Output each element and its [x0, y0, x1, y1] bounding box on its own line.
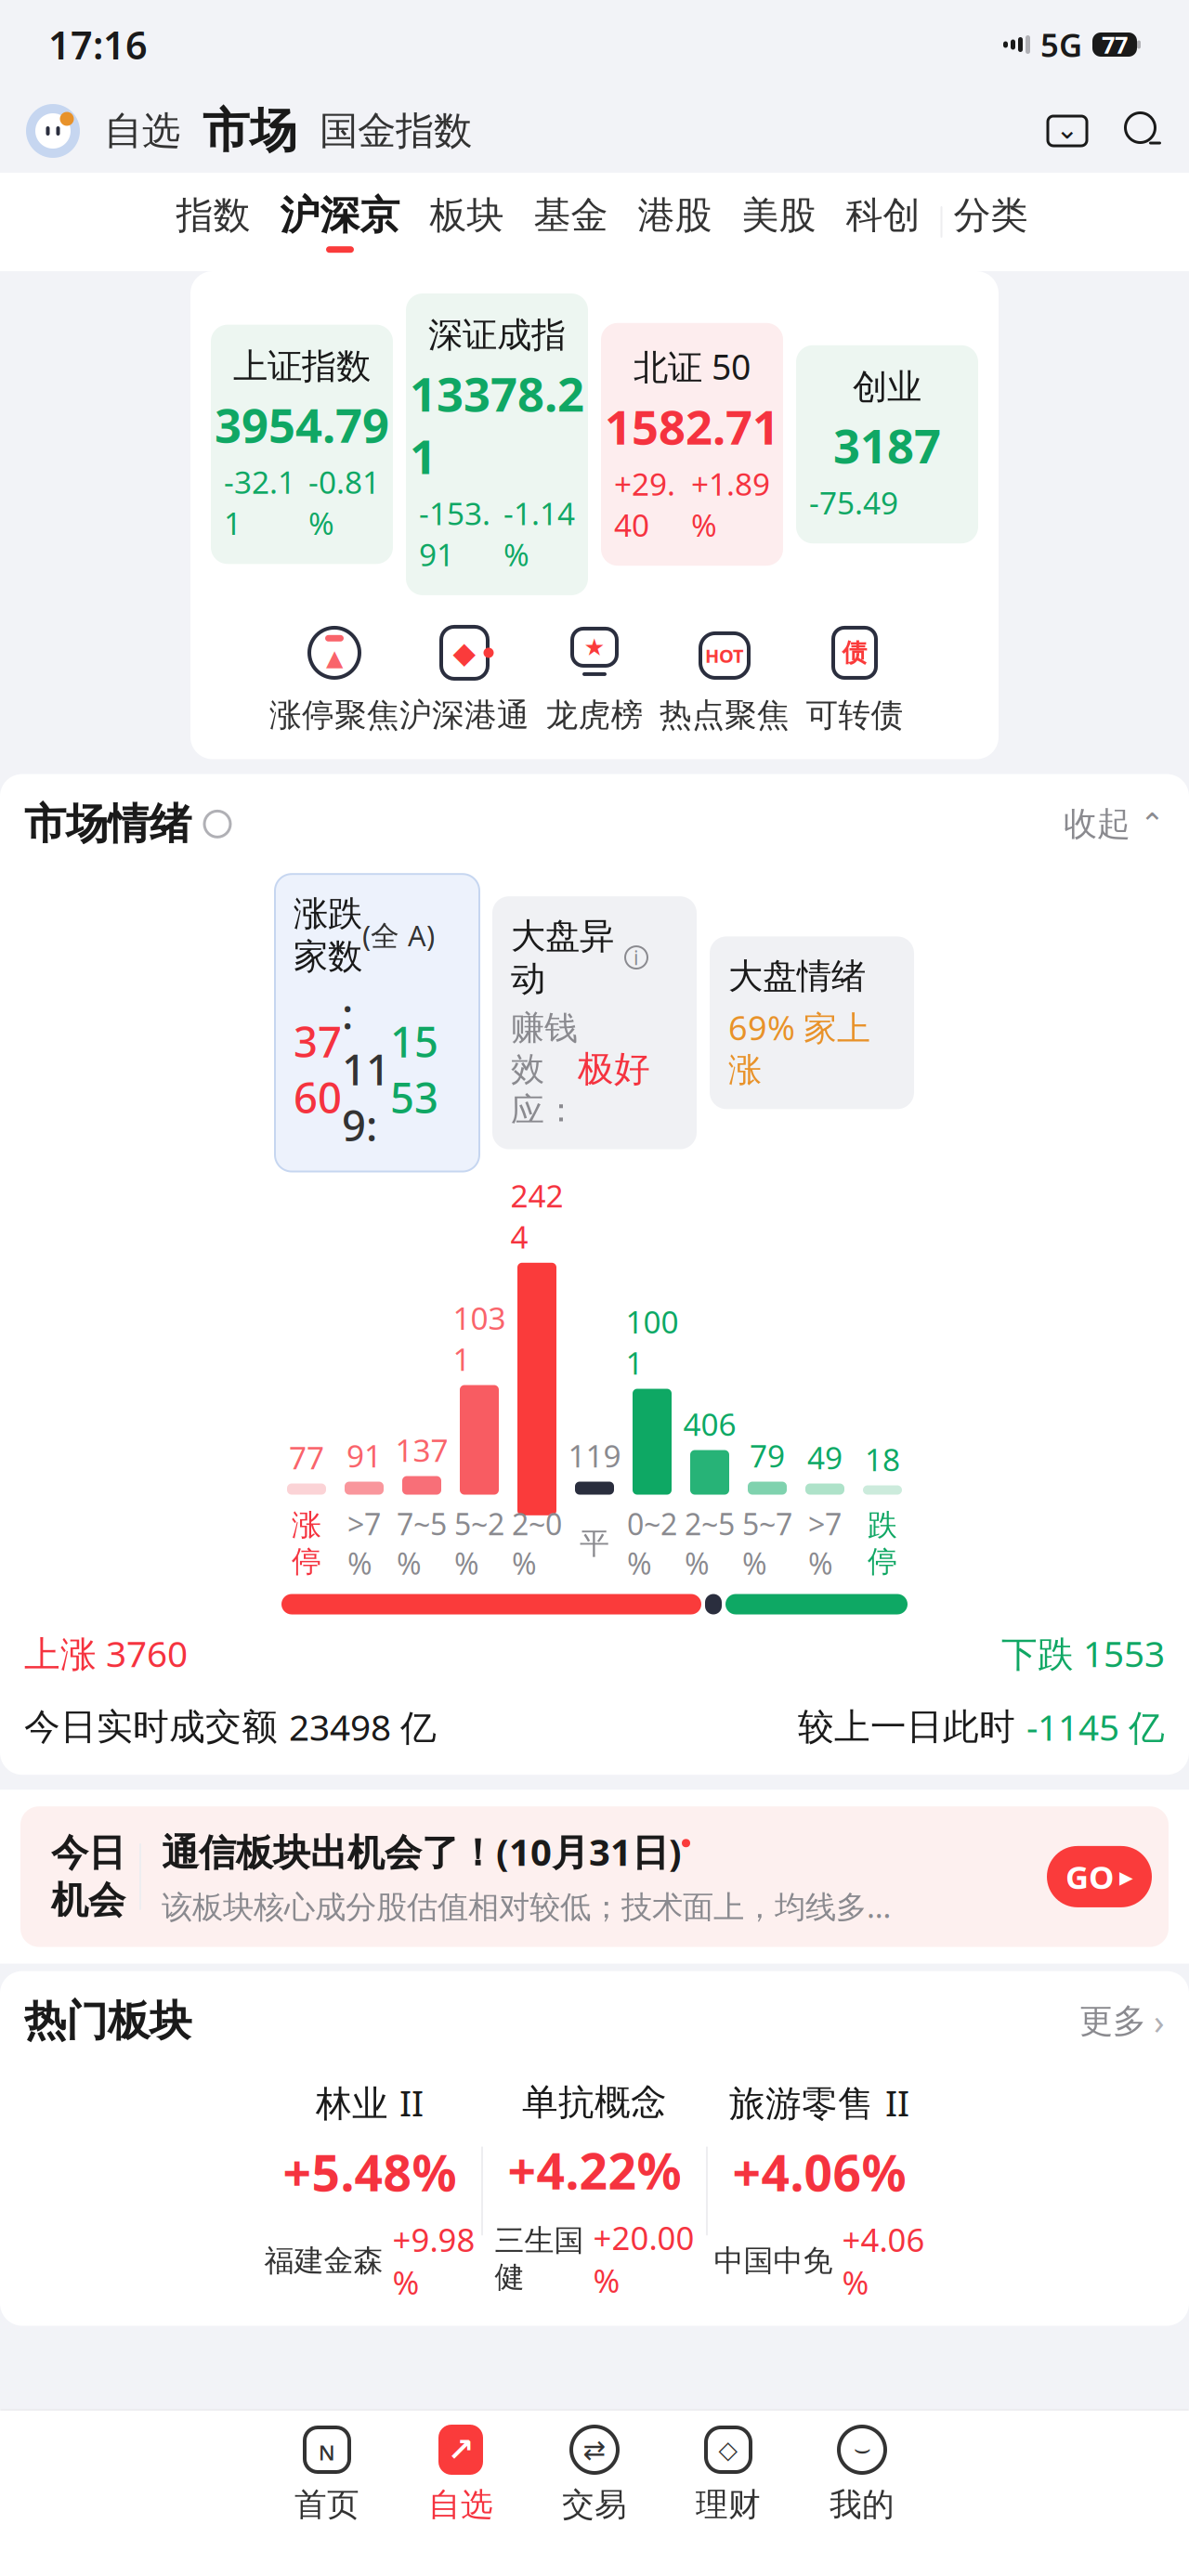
staticText: 今日	[51, 1830, 125, 1876]
button[interactable]: 上证指数	[211, 325, 393, 564]
staticText: 自选	[428, 2485, 493, 2525]
button[interactable]: ◇	[661, 2424, 795, 2525]
staticText: 国金指数	[320, 107, 472, 155]
button[interactable]: 今日	[0, 1790, 1189, 1964]
staticText: 极好	[578, 1047, 650, 1091]
staticText: ɴ	[318, 2432, 336, 2468]
staticText: 旅游零售 II	[729, 2079, 909, 2126]
staticText: 5~7%	[742, 1504, 792, 1583]
button[interactable]: 刷新	[204, 811, 230, 837]
button[interactable]: 搜索	[1122, 110, 1165, 152]
button[interactable]: 创业	[796, 345, 978, 543]
button[interactable]: 基金	[519, 193, 623, 251]
staticText: 交易	[562, 2485, 627, 2525]
staticText: +4.22%	[508, 2137, 681, 2203]
button[interactable]: 旅游零售 II	[708, 2079, 931, 2303]
staticText: -1.14%	[503, 493, 575, 575]
staticText: 7~5%	[397, 1504, 447, 1583]
button[interactable]: 美股	[727, 193, 831, 251]
staticText: 中国中免	[714, 2242, 833, 2279]
staticText: 分类	[954, 193, 1028, 238]
button[interactable]: 收起	[1064, 804, 1165, 845]
button[interactable]: ◆	[399, 623, 529, 735]
staticText: ★	[584, 634, 605, 661]
staticText: 机会	[51, 1878, 125, 1923]
button[interactable]: 港股	[623, 193, 727, 251]
staticText: 1031	[453, 1297, 506, 1379]
button[interactable]: 自选	[104, 107, 180, 155]
button[interactable]: 市场	[203, 102, 297, 160]
staticText: 69% 家上涨	[728, 1005, 870, 1090]
staticText: 市场情绪	[24, 798, 191, 850]
staticText: 119	[568, 1435, 621, 1476]
button[interactable]: 板块	[415, 193, 519, 251]
button[interactable]: HOT	[660, 623, 790, 735]
staticText: -1145 亿	[1026, 1703, 1165, 1751]
button[interactable]: 指数	[161, 193, 265, 251]
staticText: 美股	[742, 193, 816, 238]
staticText: ⇄	[583, 2434, 606, 2465]
button[interactable]: 用户头像	[24, 102, 82, 160]
staticText: 23498 亿	[289, 1703, 437, 1751]
staticText: 指数	[176, 193, 250, 238]
staticText: 2424	[510, 1175, 563, 1257]
button[interactable]: 林业 II	[258, 2079, 481, 2303]
button[interactable]: ▲	[269, 623, 399, 735]
button[interactable]: 更多	[1079, 1998, 1165, 2044]
staticText: :119:	[342, 985, 390, 1153]
staticText: GO	[1065, 1855, 1114, 1898]
staticText: 上涨 3760	[24, 1629, 188, 1677]
button[interactable]: ɴ	[260, 2424, 394, 2525]
button[interactable]: 国金指数	[320, 107, 472, 155]
button[interactable]: ⇄	[528, 2424, 661, 2525]
staticText: 17:16	[48, 19, 148, 70]
button[interactable]: 北证 50	[601, 323, 783, 566]
staticText: 三生国健	[495, 2222, 584, 2295]
staticText: 平	[580, 1525, 609, 1562]
staticText: 上证指数	[233, 345, 371, 388]
staticText: 3760	[294, 1013, 342, 1125]
staticText: 77	[1102, 29, 1128, 60]
staticText: 79	[750, 1435, 785, 1476]
button[interactable]: ⌣	[795, 2424, 929, 2525]
staticText: +4.06%	[842, 2218, 925, 2303]
staticText: +4.06%	[732, 2139, 906, 2205]
staticText: 2~5%	[685, 1504, 735, 1583]
staticText: 该板块核心成分股估值相对较低；技术面上，均线多…	[162, 1885, 891, 1927]
staticText: 板块	[430, 193, 504, 238]
staticText: 1001	[626, 1301, 679, 1383]
staticText: 0~2%	[627, 1504, 677, 1583]
staticText: 收起	[1064, 804, 1130, 845]
staticText: -75.49	[809, 482, 898, 523]
staticText: 137	[395, 1429, 448, 1471]
staticText: 通信板块出机会了！(10月31日)	[162, 1827, 682, 1876]
staticText: 18	[865, 1439, 900, 1480]
staticText: 市场	[203, 102, 297, 160]
button[interactable]: 科创	[831, 193, 935, 251]
staticText: 3954.79	[215, 393, 389, 456]
staticText: 406	[683, 1403, 736, 1445]
button[interactable]: 单抗概念	[483, 2080, 706, 2302]
staticText: HOT	[705, 643, 744, 668]
staticText: ▲	[326, 645, 343, 670]
staticText: +20.00%	[593, 2216, 694, 2302]
button[interactable]: ★	[529, 623, 660, 735]
staticText: +9.98%	[392, 2218, 475, 2303]
button[interactable]: 分类	[954, 193, 1028, 251]
button[interactable]: 消息	[1046, 110, 1089, 152]
button[interactable]: 深证成指	[406, 293, 588, 595]
staticText: 福建金森	[264, 2242, 383, 2279]
button[interactable]: 沪深京	[265, 191, 415, 253]
staticText: 林业 II	[316, 2079, 424, 2126]
staticText: 49	[807, 1437, 843, 1478]
staticText: 北证 50	[634, 343, 751, 389]
button[interactable]: ↗	[394, 2424, 528, 2525]
button[interactable]: 债	[790, 623, 920, 735]
staticText: 3187	[833, 414, 941, 476]
staticText: 可转债	[806, 696, 903, 735]
staticText: ◆	[453, 636, 476, 670]
staticText: 涨停聚焦	[269, 696, 399, 735]
staticText: 跌停	[868, 1507, 897, 1580]
staticText: 5G	[1040, 23, 1082, 66]
staticText: 港股	[638, 193, 712, 238]
